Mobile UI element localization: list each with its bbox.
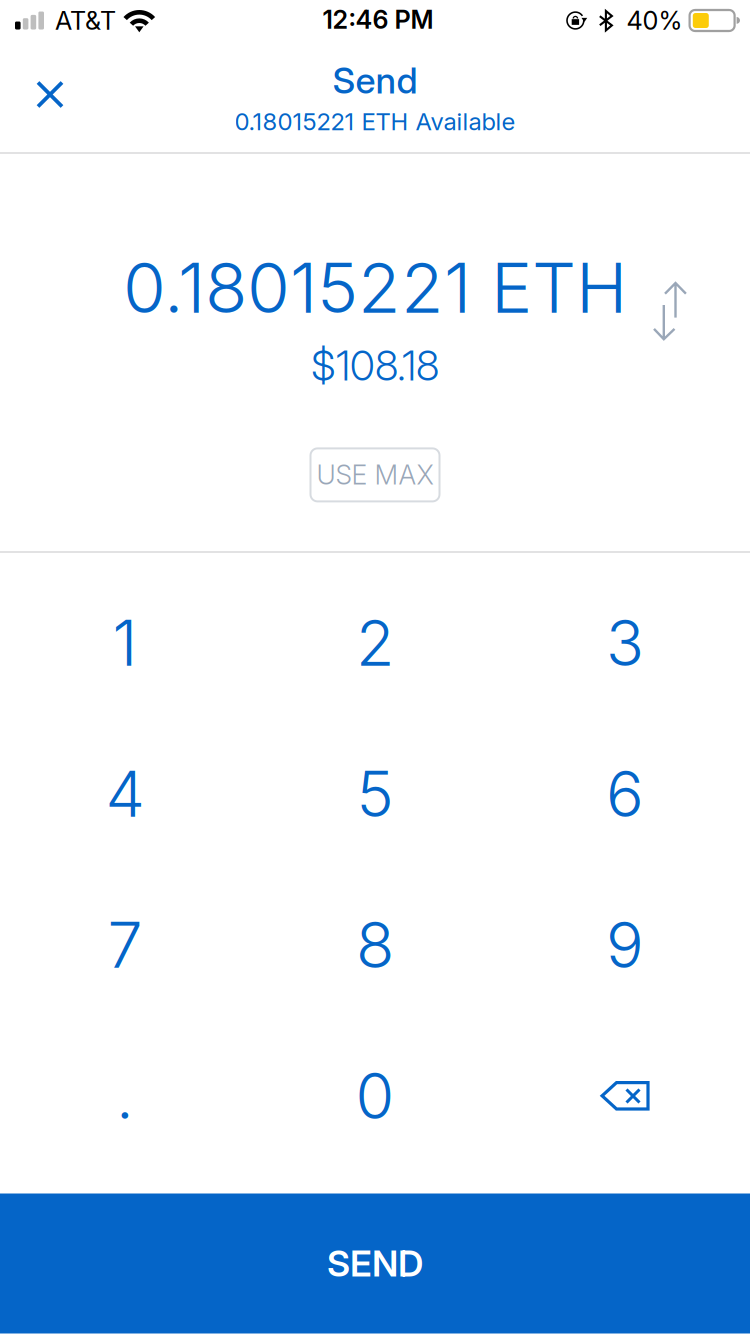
button[interactable]: 6 bbox=[500, 718, 750, 869]
staticText: 3 bbox=[606, 605, 644, 681]
staticText: 2 bbox=[356, 605, 394, 681]
staticText: 12:46 PM bbox=[322, 4, 433, 35]
button[interactable]: 8 bbox=[250, 869, 500, 1020]
staticText: 0.18015221 ETH Available bbox=[234, 107, 515, 136]
staticText: SEND bbox=[327, 1242, 423, 1285]
button[interactable]: 2 bbox=[250, 567, 500, 718]
button[interactable]: . bbox=[0, 1020, 250, 1171]
button[interactable]: 3 bbox=[500, 567, 750, 718]
button[interactable]: SEND bbox=[0, 1193, 750, 1333]
staticText: Send bbox=[332, 58, 417, 102]
button[interactable]: 0 bbox=[250, 1020, 500, 1171]
button[interactable]: 4 bbox=[0, 718, 250, 869]
button[interactable]: 5 bbox=[250, 718, 500, 869]
staticText: 40% bbox=[627, 5, 683, 36]
button[interactable]: USE MAX bbox=[310, 448, 439, 501]
staticText: 5 bbox=[356, 756, 393, 832]
button[interactable]: Close bbox=[12, 56, 88, 132]
staticText: . bbox=[116, 1058, 134, 1134]
button[interactable]: 1 bbox=[0, 567, 250, 718]
button[interactable]: 7 bbox=[0, 869, 250, 1020]
staticText: USE MAX bbox=[316, 459, 433, 491]
staticText: 1 bbox=[112, 605, 137, 681]
button[interactable]: Switch currency bbox=[633, 261, 707, 361]
staticText: 0 bbox=[355, 1058, 394, 1134]
staticText: 9 bbox=[606, 907, 644, 983]
button[interactable]: Delete bbox=[500, 1020, 750, 1171]
staticText: 0.18015221 ETH bbox=[123, 245, 627, 329]
staticText: AT&T bbox=[55, 5, 116, 36]
button[interactable]: 9 bbox=[500, 869, 750, 1020]
staticText: 8 bbox=[356, 907, 394, 983]
staticText: 7 bbox=[107, 907, 142, 983]
staticText: 6 bbox=[606, 756, 644, 832]
staticText: $108.18 bbox=[311, 340, 439, 390]
staticText: 4 bbox=[105, 756, 144, 832]
